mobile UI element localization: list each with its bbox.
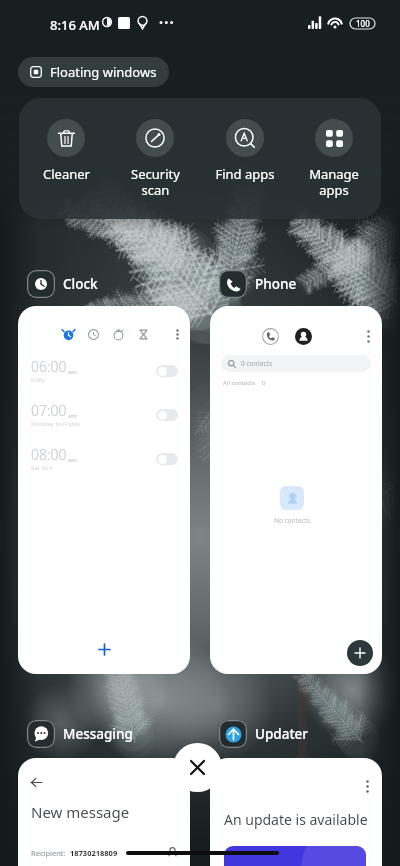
- staticText: Clock: [63, 275, 98, 293]
- staticText: 0: [262, 379, 266, 387]
- button[interactable]: 0 contacts: [210, 306, 382, 674]
- staticText: Find apps: [215, 165, 275, 183]
- staticText: 100: [356, 18, 370, 29]
- staticText: Updater: [255, 725, 309, 743]
- staticText: 08:00: [31, 445, 67, 464]
- staticText: All contacts: [223, 379, 256, 387]
- staticText: No contacts: [274, 516, 311, 525]
- button[interactable]: Add contact: [347, 640, 373, 666]
- button[interactable]: New message: [18, 758, 190, 866]
- staticText: Sat Sun: [31, 464, 53, 472]
- button[interactable]: Manage apps: [292, 98, 376, 219]
- button[interactable]: Close all: [173, 743, 222, 792]
- button[interactable]: Find apps: [203, 98, 287, 219]
- staticText: Floating windows: [50, 63, 157, 81]
- staticText: am: [68, 456, 77, 464]
- staticText: 8:16 AM: [50, 16, 100, 34]
- staticText: 0 contacts: [241, 359, 273, 368]
- staticText: Daily: [31, 376, 45, 384]
- staticText: Security scan: [131, 165, 180, 198]
- staticText: 07:00: [31, 401, 67, 420]
- button[interactable]: 06:00: [18, 306, 190, 674]
- staticText: Messaging: [63, 725, 133, 743]
- button[interactable]: Clock: [27, 270, 98, 298]
- staticText: Monday to Friday: [31, 420, 81, 428]
- staticText: am: [68, 368, 77, 376]
- staticText: 18730218809: [70, 848, 118, 858]
- staticText: Recipient:: [31, 848, 66, 858]
- staticText: 06:00: [31, 357, 67, 376]
- button[interactable]: An update is available: [210, 758, 382, 866]
- staticText: am: [68, 412, 77, 420]
- button[interactable]: Security scan: [113, 98, 197, 219]
- button[interactable]: Messaging: [27, 720, 133, 748]
- staticText: An update is available: [224, 810, 368, 829]
- staticText: Cleaner: [43, 165, 90, 183]
- staticText: New message: [31, 802, 130, 822]
- button[interactable]: Floating windows: [18, 57, 169, 87]
- button[interactable]: Phone: [219, 270, 297, 298]
- staticText: Phone: [255, 275, 297, 293]
- button[interactable]: Cleaner: [24, 98, 108, 219]
- staticText: Manage apps: [309, 165, 359, 198]
- button[interactable]: Updater: [219, 720, 309, 748]
